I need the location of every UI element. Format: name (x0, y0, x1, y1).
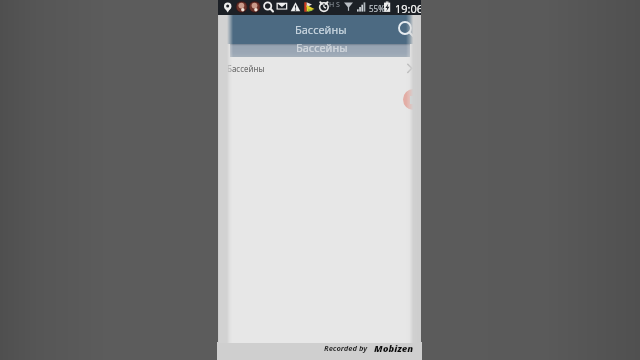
staticText: H S (329, 0, 340, 10)
staticText: Mobizen (374, 342, 414, 355)
staticText: Recorded by (324, 343, 368, 353)
staticText: Бассейны (296, 40, 348, 55)
button[interactable]: Mobizen recorder (403, 89, 421, 110)
staticText: 19:06 (395, 1, 421, 16)
staticText: Бассейны (227, 63, 265, 74)
button[interactable]: Search (393, 16, 419, 42)
staticText: Бассейны (295, 22, 347, 37)
staticText: 55% (369, 3, 385, 14)
button[interactable]: Бассейны (218, 57, 421, 85)
